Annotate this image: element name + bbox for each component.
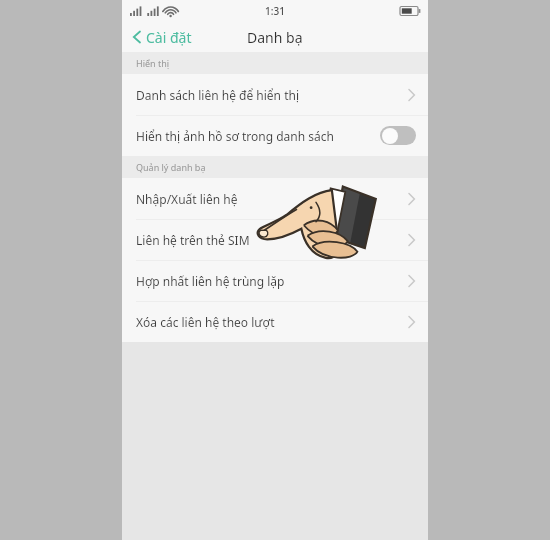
staticText: Liên hệ trên thẻ SIM: [136, 232, 407, 248]
staticText: Danh bạ: [247, 28, 303, 47]
staticText: Cài đặt: [146, 28, 192, 47]
button[interactable]: Cài đặt: [122, 22, 200, 52]
staticText: Xóa các liên hệ theo lượt: [136, 314, 407, 330]
button[interactable]: Liên hệ trên thẻ SIM: [122, 219, 428, 260]
button[interactable]: Toggle show profile photos: [380, 126, 416, 145]
staticText: Nhập/Xuất liên hệ: [136, 191, 407, 207]
button[interactable]: Xóa các liên hệ theo lượt: [122, 301, 428, 342]
staticText: Danh sách liên hệ để hiển thị: [136, 87, 407, 103]
staticText: Quản lý danh bạ: [136, 161, 206, 173]
button[interactable]: Danh sách liên hệ để hiển thị: [122, 74, 428, 115]
staticText: Hiển thị: [136, 57, 170, 69]
staticText: Hiển thị ảnh hồ sơ trong danh sách: [136, 128, 380, 144]
button[interactable]: Hiển thị ảnh hồ sơ trong danh sách: [122, 115, 428, 156]
staticText: 1:31: [265, 4, 285, 18]
button[interactable]: Nhập/Xuất liên hệ: [122, 178, 428, 219]
staticText: Hợp nhất liên hệ trùng lặp: [136, 273, 407, 289]
button[interactable]: Hợp nhất liên hệ trùng lặp: [122, 260, 428, 301]
